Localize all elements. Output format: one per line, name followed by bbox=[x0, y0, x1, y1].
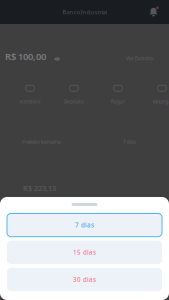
staticText: Depósito bbox=[64, 99, 84, 105]
staticText: 15 dias bbox=[73, 248, 96, 256]
button[interactable]: Depósito bbox=[52, 85, 96, 105]
staticText: Transferir bbox=[19, 99, 41, 105]
button[interactable]: Recarga bbox=[140, 85, 169, 105]
button[interactable]: Hide balance bbox=[46, 57, 60, 63]
staticText: Banco Industrial bbox=[62, 8, 106, 16]
staticText: Ver Extrato bbox=[126, 55, 153, 62]
button[interactable]: Transferir bbox=[8, 85, 52, 105]
button[interactable]: 7 dias bbox=[7, 213, 162, 237]
button[interactable]: Ver Extrato bbox=[126, 55, 153, 63]
staticText: R$ 100,00 bbox=[5, 50, 46, 63]
staticText: Previsão bancária bbox=[22, 139, 61, 145]
staticText: 7 dias bbox=[123, 139, 136, 145]
staticText: 7 dias bbox=[75, 221, 94, 229]
staticText: Recarga bbox=[152, 99, 169, 105]
button[interactable]: 30 dias bbox=[7, 268, 162, 291]
staticText: R$ 223,13 bbox=[23, 183, 56, 193]
button[interactable]: 15 dias bbox=[7, 241, 162, 264]
button[interactable]: Pagar bbox=[96, 85, 140, 105]
staticText: 30 dias bbox=[73, 275, 96, 284]
staticText: Pagar bbox=[111, 99, 125, 105]
button[interactable]: Notifications bbox=[149, 6, 169, 17]
